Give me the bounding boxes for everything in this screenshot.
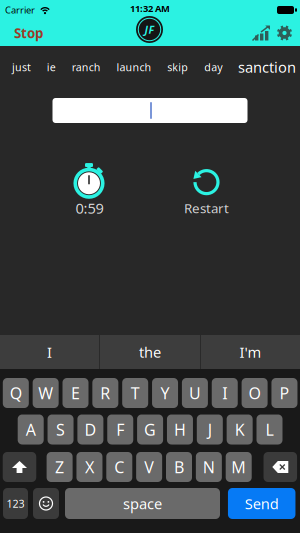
button[interactable]: I'm (201, 335, 300, 369)
button[interactable]: I (0, 335, 99, 369)
button[interactable]: H (167, 414, 193, 444)
button[interactable]: X (76, 452, 102, 482)
button[interactable]: R (92, 378, 118, 408)
button[interactable]: Z (47, 452, 73, 482)
button[interactable] (3, 452, 36, 482)
staticText: 11:32 AM (130, 2, 170, 15)
staticText: N (203, 456, 215, 478)
button[interactable]: A (18, 414, 44, 444)
button[interactable]: N (196, 452, 222, 482)
staticText: C (114, 456, 124, 478)
button[interactable]: B (166, 452, 192, 482)
button[interactable]: M (226, 452, 252, 482)
button[interactable]: U (182, 378, 208, 408)
button[interactable]: J (197, 414, 223, 444)
staticText: S (56, 419, 65, 440)
staticText: I (47, 342, 52, 362)
staticText: skip (167, 60, 188, 74)
staticText: O (249, 382, 261, 404)
staticText: space (123, 494, 162, 513)
button[interactable] (276, 25, 292, 41)
button[interactable]: P (271, 378, 297, 408)
staticText: Stop (14, 24, 43, 42)
button[interactable]: L (256, 414, 282, 444)
staticText: R (100, 382, 110, 404)
staticText: Z (55, 456, 64, 478)
staticText: X (85, 456, 94, 478)
staticText: W (38, 382, 53, 404)
button[interactable]: ranch (72, 60, 101, 74)
staticText: B (174, 456, 184, 478)
button[interactable]: just (12, 60, 31, 74)
staticText: Send (245, 494, 279, 513)
staticText: Y (161, 382, 170, 404)
staticText: Restart (184, 199, 229, 217)
staticText: the (139, 342, 161, 362)
button[interactable]: Restart (184, 165, 229, 217)
button[interactable]: W (33, 378, 59, 408)
staticText: K (235, 419, 245, 440)
staticText: 0:59 (75, 198, 103, 218)
button[interactable]: C (106, 452, 132, 482)
button[interactable]: Q (3, 378, 29, 408)
button[interactable]: F (107, 414, 133, 444)
button[interactable]: D (77, 414, 103, 444)
button[interactable]: skip (167, 60, 188, 74)
staticText: T (131, 382, 140, 404)
staticText: day (204, 60, 222, 74)
button[interactable]: day (204, 60, 222, 74)
button[interactable]: 123 (3, 488, 28, 519)
button[interactable]: K (227, 414, 253, 444)
button[interactable]: T (122, 378, 148, 408)
staticText: A (26, 419, 36, 440)
button[interactable] (252, 25, 270, 40)
staticText: I (222, 382, 227, 404)
staticText: Q (10, 382, 22, 404)
staticText: ranch (72, 60, 101, 74)
staticText: ie (47, 60, 56, 74)
button[interactable]: Stop (14, 24, 43, 42)
staticText: F (116, 419, 124, 440)
button[interactable]: launch (116, 60, 151, 74)
staticText: G (144, 419, 156, 440)
button[interactable]: sanction (238, 57, 296, 77)
staticText: U (189, 382, 201, 404)
staticText: D (84, 419, 96, 440)
button[interactable]: 0:59 (72, 162, 106, 218)
staticText: J (208, 419, 212, 440)
button[interactable]: I (212, 378, 238, 408)
button[interactable] (33, 488, 59, 519)
button[interactable]: V (136, 452, 162, 482)
staticText: H (174, 419, 186, 440)
button[interactable]: Send (228, 488, 295, 519)
staticText: P (279, 382, 289, 404)
button[interactable] (52, 98, 247, 123)
staticText: 123 (6, 496, 24, 511)
button[interactable]: E (62, 378, 88, 408)
button[interactable]: space (65, 488, 220, 519)
staticText: M (231, 456, 246, 478)
button[interactable]: G (137, 414, 163, 444)
button[interactable]: Y (152, 378, 178, 408)
button[interactable]: ie (47, 60, 56, 74)
staticText: sanction (238, 57, 296, 77)
button[interactable]: O (242, 378, 268, 408)
staticText: L (265, 419, 273, 440)
staticText: launch (116, 60, 151, 74)
button[interactable]: S (47, 414, 73, 444)
staticText: just (12, 60, 31, 74)
button[interactable] (264, 452, 297, 482)
staticText: Carrier (5, 4, 35, 16)
staticText: V (144, 456, 154, 478)
button[interactable]: the (100, 335, 200, 369)
staticText: E (71, 382, 80, 404)
staticText: JF (144, 22, 154, 37)
staticText: I'm (239, 342, 261, 362)
